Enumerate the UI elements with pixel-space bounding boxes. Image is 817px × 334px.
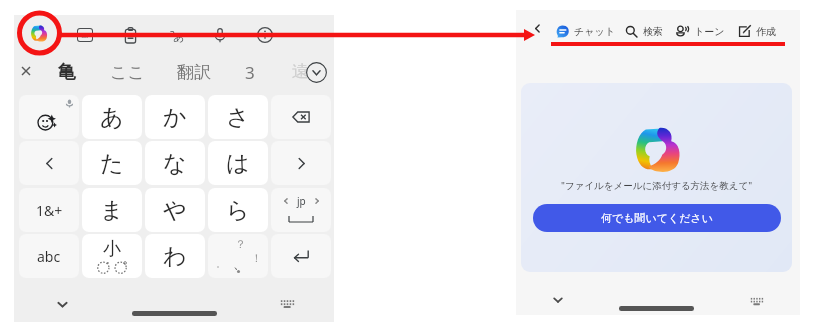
button[interactable]: ま (82, 188, 142, 232)
button[interactable]: ら (208, 188, 268, 232)
staticText: ？ (235, 237, 246, 251)
button[interactable]: た (82, 141, 142, 185)
button[interactable]: 小 (82, 234, 142, 278)
button[interactable]: は (208, 141, 268, 185)
button[interactable]: 1&+ (19, 188, 79, 232)
staticText: "ファイルをメールに添付する方法を教えて" (561, 179, 753, 192)
button[interactable]: GIF (73, 23, 97, 47)
button[interactable]: チャット (556, 21, 615, 41)
staticText: わ (163, 242, 187, 271)
staticText: 。 (216, 258, 225, 269)
button[interactable]: Close suggestions (16, 61, 36, 81)
staticText: 検索 (643, 25, 663, 38)
staticText: 遠 (292, 61, 309, 82)
button[interactable]: Settings (253, 23, 277, 47)
staticText: や (163, 196, 187, 225)
button[interactable]: More (298, 23, 322, 47)
staticText: GIF (81, 32, 90, 39)
button[interactable] (271, 95, 331, 139)
button[interactable] (19, 95, 79, 139)
button[interactable] (19, 141, 79, 185)
staticText: 作成 (756, 25, 776, 38)
button[interactable]: ここ (103, 59, 151, 85)
button[interactable]: Hide keyboard (547, 289, 569, 311)
button[interactable]: Clipboard (118, 23, 142, 47)
button[interactable]: Back (527, 18, 547, 38)
staticText: ！ (251, 251, 262, 265)
button[interactable]: トーン (676, 21, 725, 41)
staticText: チャット (574, 25, 615, 38)
staticText: jp (297, 194, 306, 208)
button[interactable] (271, 234, 331, 278)
staticText: 小 (103, 238, 121, 261)
button[interactable]: Translate (164, 23, 188, 47)
staticText: 、 (233, 255, 246, 271)
staticText: た (100, 149, 124, 178)
staticText: トーン (694, 25, 725, 38)
button[interactable]: あ (82, 95, 142, 139)
staticText: な (163, 149, 187, 178)
button[interactable]: さ (208, 95, 268, 139)
button[interactable]: な (145, 141, 205, 185)
staticText: a (169, 25, 176, 40)
staticText: 亀 (58, 61, 76, 84)
staticText: 3 (245, 61, 255, 84)
button[interactable] (271, 141, 331, 185)
button[interactable]: や (145, 188, 205, 232)
button[interactable]: Expand suggestions (304, 60, 328, 84)
button[interactable]: 亀 (43, 59, 91, 85)
staticText: は (226, 149, 250, 178)
staticText: ここ (110, 62, 145, 83)
button[interactable]: わ (145, 234, 205, 278)
staticText: あ (100, 103, 124, 132)
staticText: 翻訳 (177, 62, 211, 83)
button[interactable]: 検索 (625, 21, 663, 41)
button[interactable]: 作成 (738, 21, 776, 41)
button[interactable]: か (145, 95, 205, 139)
staticText: さ (226, 103, 250, 132)
button[interactable]: Hide keyboard (50, 292, 74, 316)
staticText: abc (37, 247, 61, 266)
button[interactable]: 何でも聞いてください (533, 204, 781, 232)
staticText: 1&+ (36, 201, 63, 220)
staticText: か (163, 103, 187, 132)
button[interactable]: 翻訳 (170, 59, 218, 85)
staticText: ら (226, 196, 250, 225)
staticText: 何でも聞いてください (601, 211, 714, 225)
button[interactable]: Switch keyboard (745, 289, 767, 311)
staticText: あ (173, 30, 185, 44)
button[interactable]: Copilot (28, 22, 50, 44)
button[interactable]: Switch keyboard (275, 291, 299, 315)
button[interactable]: ？ (208, 234, 268, 278)
button[interactable]: Voice (208, 23, 232, 47)
button[interactable]: 3 (226, 59, 274, 85)
button[interactable]: "ファイルをメールに添付する方法を教えて" (521, 83, 792, 272)
button[interactable]: jp (271, 188, 331, 232)
button[interactable]: abc (19, 234, 79, 278)
staticText: ま (100, 196, 124, 225)
